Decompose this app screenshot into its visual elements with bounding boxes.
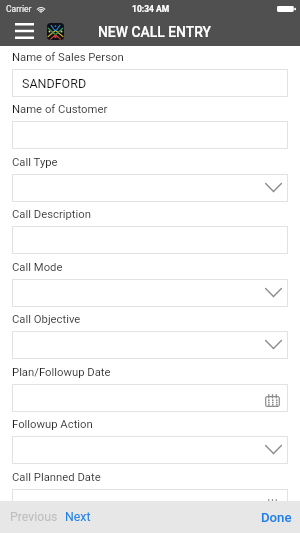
- staticText: Call Planned Date: [12, 471, 101, 484]
- button[interactable]: [12, 384, 288, 412]
- staticText: Call Description: [12, 208, 91, 221]
- staticText: Call Type: [12, 156, 58, 169]
- staticText: Plan/Followup Date: [12, 366, 111, 379]
- button[interactable]: Previous: [0, 505, 63, 529]
- button[interactable]: Open navigation menu: [9, 17, 39, 46]
- button[interactable]: [12, 226, 288, 254]
- button[interactable]: Done: [253, 505, 300, 530]
- button[interactable]: [12, 121, 288, 149]
- staticText: Call Objective: [12, 313, 81, 326]
- staticText: SANDFORD: [22, 76, 87, 91]
- staticText: Previous: [10, 510, 58, 524]
- staticText: Call Mode: [12, 261, 63, 274]
- staticText: NEW CALL ENTRY: [98, 24, 212, 40]
- staticText: 10:34 AM: [132, 4, 170, 14]
- button[interactable]: [12, 436, 288, 464]
- button[interactable]: [12, 331, 288, 359]
- staticText: Name of Customer: [12, 103, 108, 116]
- staticText: Done: [261, 510, 292, 525]
- button[interactable]: [12, 489, 288, 517]
- staticText: Name of Sales Person: [12, 51, 124, 64]
- button[interactable]: Next: [63, 505, 97, 529]
- button[interactable]: SANDFORD: [12, 69, 288, 97]
- staticText: Carrier: [6, 4, 32, 14]
- button[interactable]: [12, 174, 288, 202]
- button[interactable]: [12, 279, 288, 307]
- staticText: Next: [65, 510, 91, 524]
- staticText: Followup Action: [12, 418, 93, 431]
